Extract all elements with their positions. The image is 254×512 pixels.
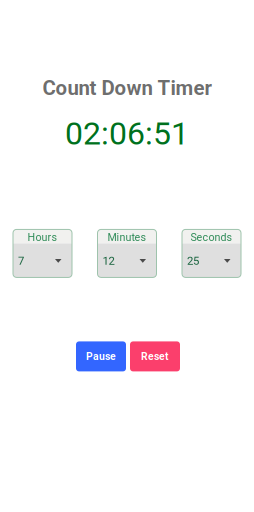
button[interactable]: Reset bbox=[130, 341, 180, 371]
button[interactable]: Seconds bbox=[182, 229, 241, 277]
staticText: Minutes bbox=[107, 231, 146, 244]
staticText: 25 bbox=[187, 254, 199, 268]
staticText: Reset bbox=[141, 350, 169, 362]
staticText: Count Down Timer bbox=[42, 76, 211, 100]
staticText: Hours bbox=[27, 231, 57, 244]
staticText: 7 bbox=[18, 254, 24, 268]
staticText: Pause bbox=[86, 350, 116, 362]
staticText: Seconds bbox=[190, 231, 232, 244]
button[interactable]: Pause bbox=[76, 341, 126, 371]
staticText: 12 bbox=[102, 254, 114, 268]
button[interactable]: Hours bbox=[13, 229, 72, 277]
staticText: 02:06:51 bbox=[65, 115, 189, 152]
button[interactable]: Minutes bbox=[97, 229, 156, 277]
